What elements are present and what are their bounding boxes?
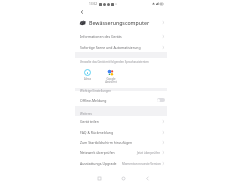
button[interactable]: Informationen des Geräts (75, 31, 167, 42)
button[interactable]: Home (119, 174, 128, 183)
button[interactable]: Back (143, 174, 152, 183)
button[interactable]: Back (77, 7, 86, 16)
staticText: Wichtige Einstellungen (80, 89, 112, 93)
staticText: Alexa (84, 77, 91, 81)
staticText: Verwalte das Gerät mit folgenden Spracha… (80, 60, 149, 64)
button[interactable]: Zum Startbildschirm hinzufügen (75, 137, 167, 147)
staticText: Bewässerungscomputer (89, 19, 150, 26)
staticText: Weiteres (80, 112, 92, 116)
button[interactable]: Google Assistent (101, 69, 120, 84)
button[interactable]: Alexa (78, 69, 97, 81)
staticText: Sofortige Szene und Automatisierung (80, 45, 141, 50)
button[interactable]: Netzwerk überprüfen (75, 147, 167, 158)
staticText: Gerät teilen (80, 119, 99, 124)
staticText: Ausstattungs-Upgrade (80, 161, 117, 166)
button[interactable]: Sofortige Szene und Automatisierung (75, 42, 167, 52)
button[interactable]: Ausstattungs-Upgrade (75, 158, 167, 169)
button[interactable]: FAQ & Rückmeldung (75, 127, 167, 137)
staticText: Offline-Meldung (80, 98, 107, 103)
staticText: Informationen des Geräts (80, 34, 122, 39)
staticText: Momentan neueste Version (122, 162, 161, 166)
staticText: FAQ & Rückmeldung (80, 130, 114, 135)
staticText: Google Assistent (105, 77, 117, 84)
button[interactable]: Bewässerungscomputer (75, 16, 167, 29)
staticText: Zum Startbildschirm hinzufügen (80, 140, 133, 145)
button[interactable]: Recents (95, 174, 104, 183)
button[interactable]: Offline-Meldung (75, 95, 167, 105)
button[interactable]: Gerät teilen (75, 116, 167, 127)
staticText: Jetzt überprüfen (137, 151, 161, 155)
staticText: Netzwerk überprüfen (80, 150, 115, 155)
staticText: 13:52 (89, 2, 98, 6)
